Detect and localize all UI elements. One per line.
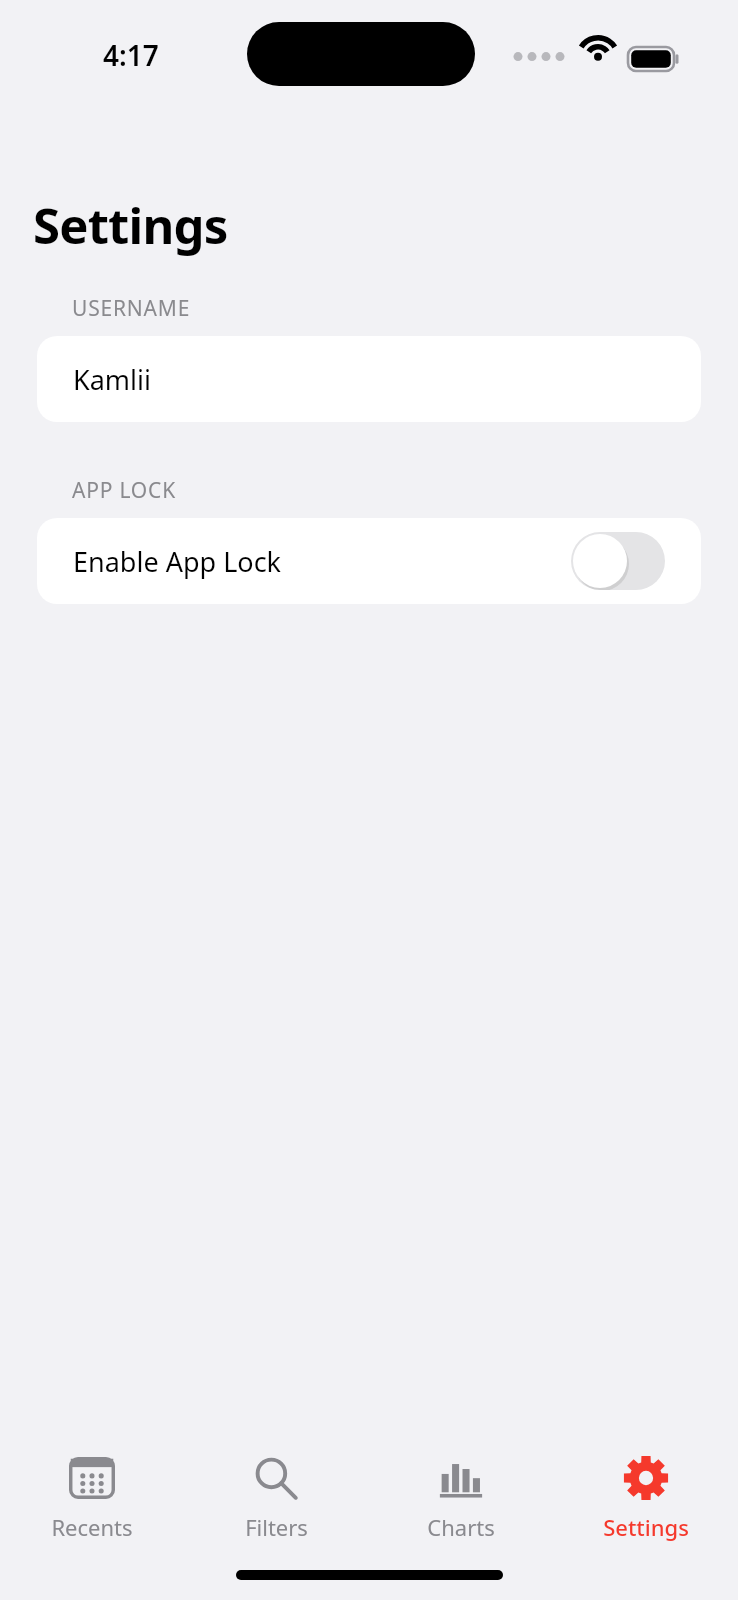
staticText: Settings bbox=[603, 1512, 689, 1542]
staticText: USERNAME bbox=[72, 294, 191, 323]
staticText: Filters bbox=[245, 1512, 308, 1542]
button[interactable]: Enable App Lock toggle bbox=[571, 532, 665, 590]
button[interactable]: Charts bbox=[368, 1446, 553, 1548]
button[interactable]: Settings bbox=[553, 1446, 738, 1548]
button[interactable]: Enable App Lock bbox=[37, 518, 701, 604]
button[interactable]: Recents bbox=[0, 1446, 184, 1548]
staticText: Kamlii bbox=[73, 361, 152, 398]
staticText: 4:17 bbox=[103, 36, 159, 74]
button[interactable]: Filters bbox=[184, 1446, 368, 1548]
staticText: APP LOCK bbox=[72, 476, 176, 505]
staticText: Settings bbox=[33, 192, 228, 259]
staticText: Charts bbox=[427, 1512, 495, 1542]
staticText: Enable App Lock bbox=[73, 543, 282, 580]
staticText: Recents bbox=[51, 1512, 133, 1542]
button[interactable]: Kamlii bbox=[37, 336, 701, 422]
